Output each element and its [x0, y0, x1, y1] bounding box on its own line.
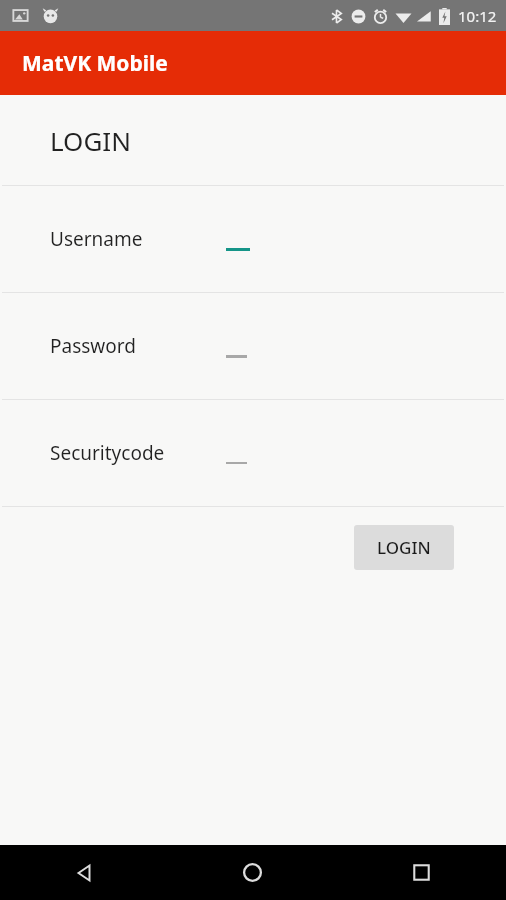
- button[interactable]: Recent apps: [337, 845, 506, 900]
- button[interactable]: LOGIN: [354, 525, 454, 570]
- staticText: MatVK Mobile: [22, 49, 168, 78]
- staticText: Securitycode: [50, 440, 165, 466]
- button[interactable]: Back: [0, 845, 168, 900]
- staticText: 10:12: [458, 6, 497, 26]
- button[interactable]: Password: [0, 293, 506, 399]
- staticText: Username: [50, 226, 143, 252]
- staticText: Password: [50, 333, 136, 359]
- button[interactable]: Home: [168, 845, 337, 900]
- staticText: LOGIN: [50, 123, 131, 158]
- button[interactable]: Securitycode: [0, 400, 506, 506]
- button[interactable]: Username: [0, 186, 506, 292]
- staticText: LOGIN: [377, 536, 431, 559]
